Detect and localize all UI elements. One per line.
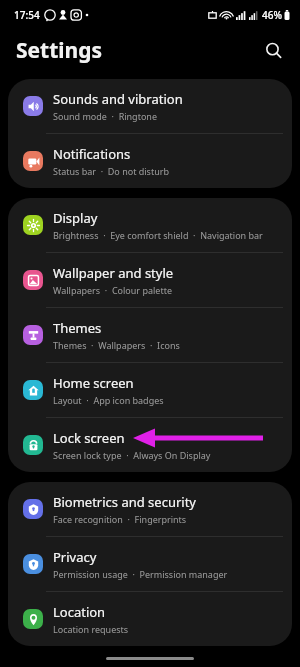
staticText: Wallpapers · Colour palette	[53, 284, 172, 296]
staticText: Home screen	[53, 374, 134, 392]
staticText: Location requests	[53, 623, 129, 635]
staticText: Themes	[53, 319, 102, 337]
button[interactable]: Wallpaper and style	[8, 253, 292, 307]
staticText: 46%	[262, 8, 282, 22]
staticText: Notifications	[53, 145, 131, 163]
staticText: Sound mode · Ringtone	[53, 110, 157, 122]
staticText: Display	[53, 209, 98, 227]
staticText: Face recognition · Fingerprints	[53, 513, 187, 525]
staticText: Settings	[16, 36, 103, 65]
button[interactable]: Privacy	[8, 537, 292, 591]
button[interactable]: Location	[8, 592, 292, 646]
staticText: Biometrics and security	[53, 493, 197, 511]
staticText: Location	[53, 603, 106, 621]
staticText: Sounds and vibration	[53, 90, 183, 108]
button[interactable]: Themes	[8, 308, 292, 362]
staticText: Permission usage · Permission manager	[53, 568, 228, 580]
button[interactable]: Home screen	[8, 363, 292, 417]
button[interactable]: Biometrics and security	[8, 482, 292, 536]
button[interactable]: Notifications	[8, 134, 292, 188]
staticText: Layout · App icon badges	[53, 394, 164, 406]
button[interactable]: Search	[256, 33, 290, 67]
staticText: Lock screen	[53, 429, 125, 447]
button[interactable]: Lock screen	[8, 418, 292, 472]
staticText: Privacy	[53, 548, 97, 566]
staticText: Brightness · Eye comfort shield · Naviga…	[53, 229, 263, 241]
staticText: Wallpaper and style	[53, 264, 174, 282]
staticText: Screen lock type · Always On Display	[53, 449, 211, 461]
button[interactable]: Sounds and vibration	[8, 79, 292, 133]
staticText: Themes · Wallpapers · Icons	[53, 339, 180, 351]
button[interactable]: Display	[8, 198, 292, 252]
staticText: Status bar · Do not disturb	[53, 165, 169, 177]
staticText: 17:54	[14, 8, 40, 22]
